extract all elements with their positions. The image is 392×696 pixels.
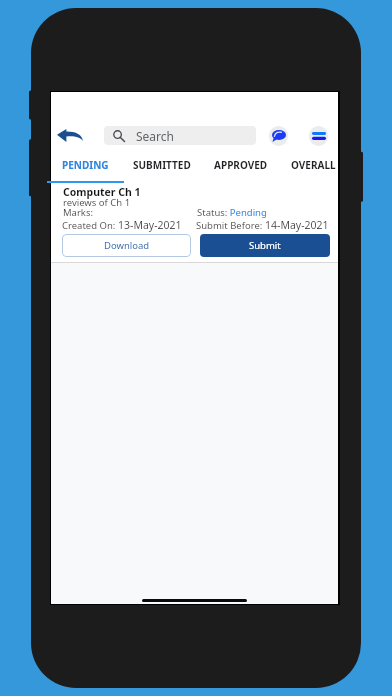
staticText: Search: [136, 128, 174, 144]
button[interactable]: Download: [62, 234, 191, 257]
staticText: Status: Pending: [197, 206, 267, 219]
staticText: Created On:: [62, 219, 118, 232]
staticText: PENDING: [62, 158, 109, 172]
button[interactable]: Messages: [269, 126, 288, 146]
staticText: APPROVED: [214, 158, 268, 172]
staticText: 14-May-2021: [265, 218, 329, 232]
button[interactable]: SUBMITTED: [123, 155, 200, 174]
staticText: reviews of Ch 1: [63, 196, 131, 209]
button[interactable]: PENDING: [47, 155, 124, 174]
button[interactable]: Back: [54, 123, 85, 147]
staticText: Submit Before:: [196, 219, 265, 232]
staticText: Download: [104, 239, 150, 252]
staticText: Computer Ch 1: [63, 185, 141, 199]
staticText: SUBMITTED: [133, 158, 191, 172]
staticText: Submit: [249, 239, 281, 252]
staticText: Marks:: [63, 206, 94, 219]
button[interactable]: OVERALL: [275, 155, 352, 174]
button[interactable]: Menu: [309, 126, 328, 146]
button[interactable]: Search: [104, 126, 256, 145]
staticText: OVERALL: [291, 158, 336, 172]
staticText: 13-May-2021: [118, 218, 182, 232]
button[interactable]: APPROVED: [202, 155, 279, 174]
button[interactable]: Submit: [200, 234, 330, 257]
